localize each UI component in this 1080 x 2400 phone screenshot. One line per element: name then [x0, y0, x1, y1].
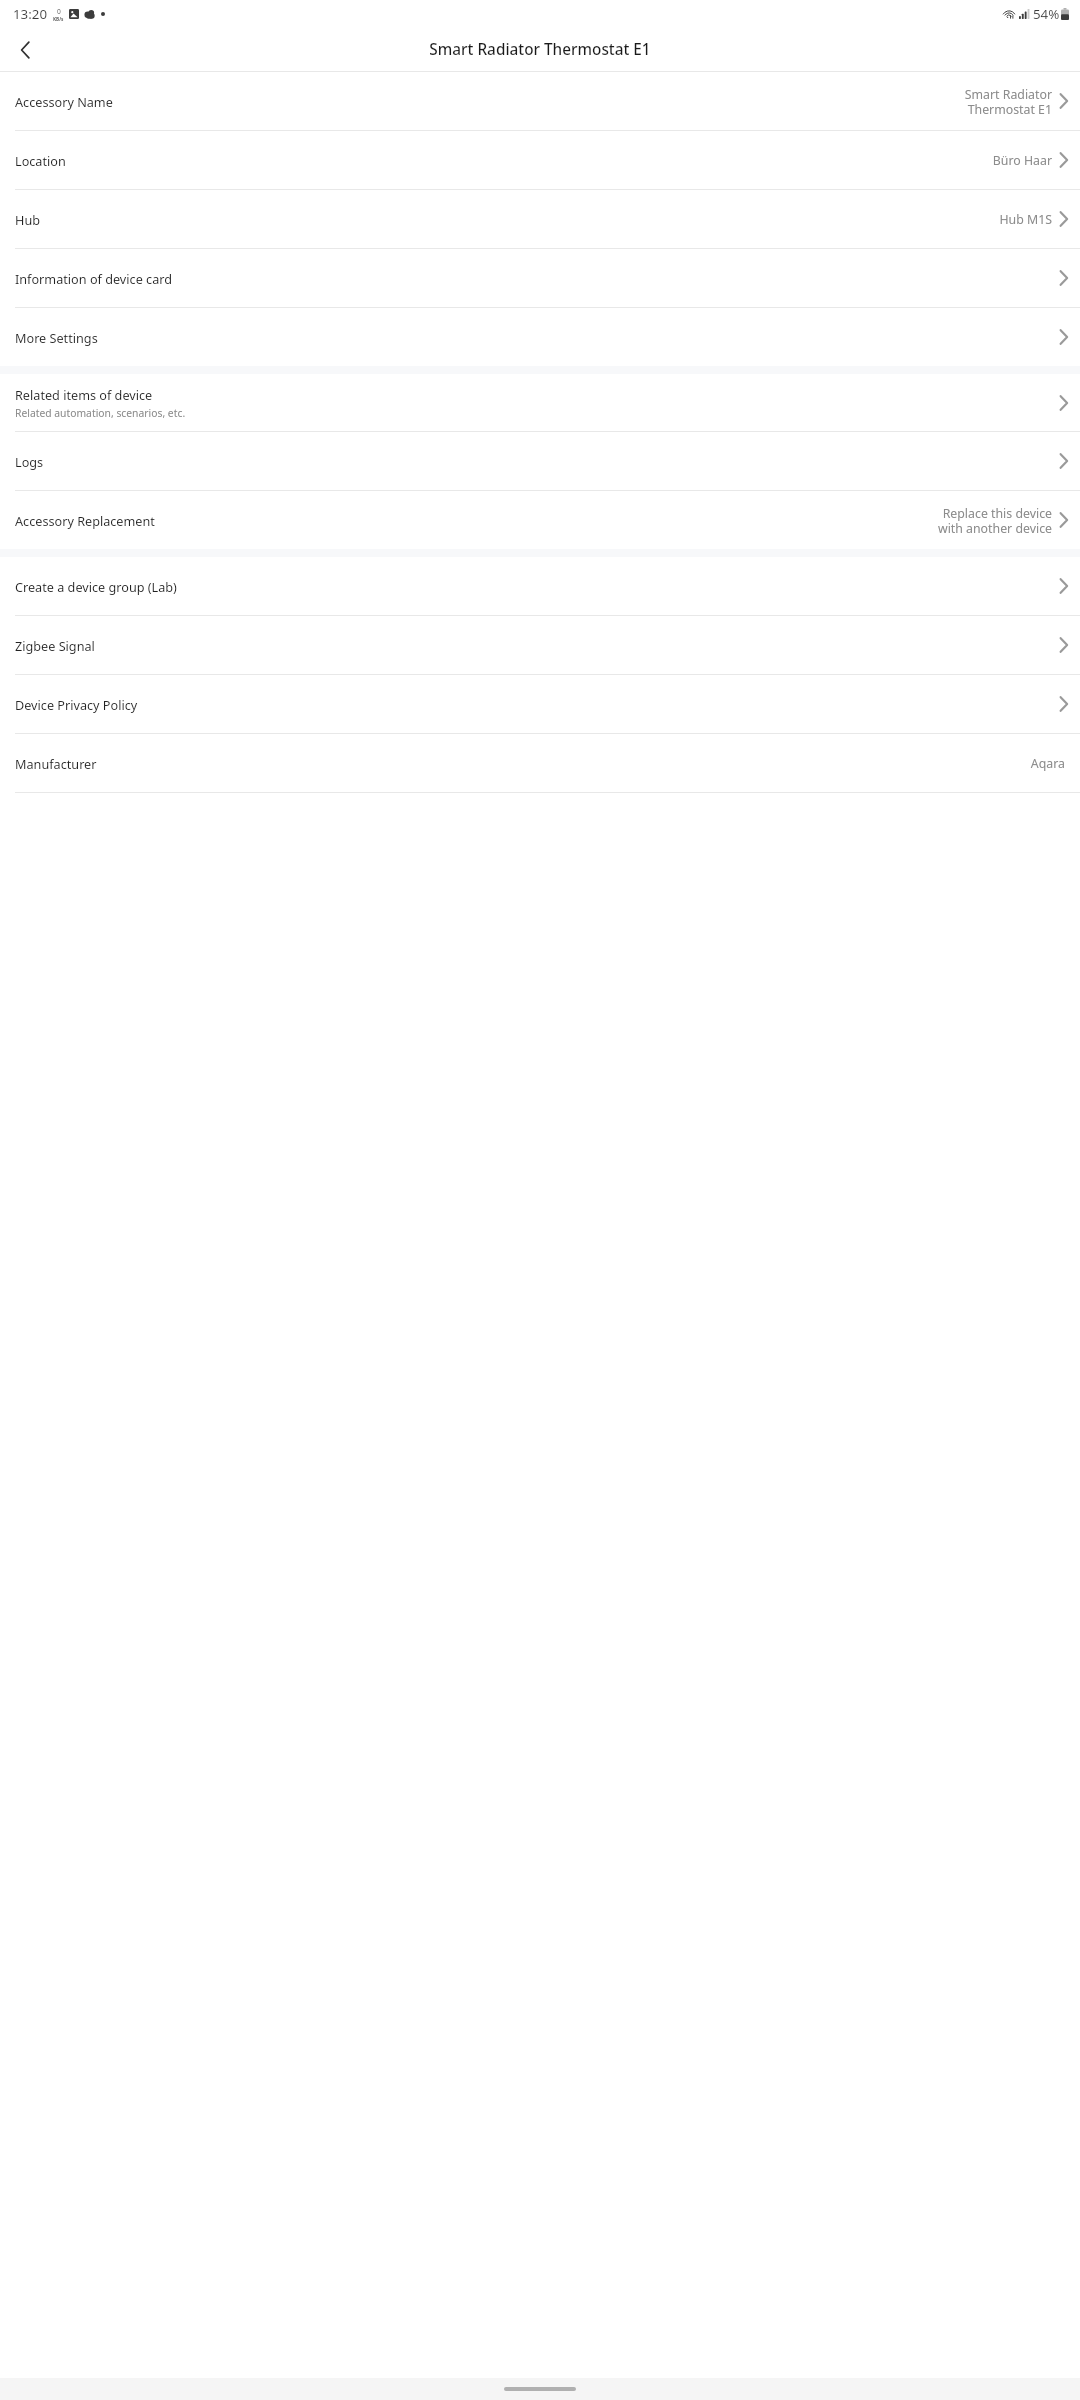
staticText: Information of device card — [15, 270, 172, 287]
staticText: Manufacturer — [15, 755, 97, 772]
staticText: Büro Haar — [992, 152, 1052, 169]
button[interactable]: Hub — [0, 190, 1080, 248]
button[interactable]: Device Privacy Policy — [0, 675, 1080, 733]
button[interactable]: Zigbee Signal — [0, 616, 1080, 674]
button[interactable]: Manufacturer — [0, 734, 1080, 792]
button[interactable]: Location — [0, 131, 1080, 189]
staticText: Replace this device with another device — [935, 505, 1052, 536]
staticText: More Settings — [15, 329, 98, 346]
staticText: 54% — [1033, 5, 1060, 23]
staticText: Hub — [15, 211, 40, 228]
staticText: Smart Radiator Thermostat E1 — [429, 39, 651, 60]
button[interactable]: Logs — [0, 432, 1080, 490]
staticText: KB/s — [53, 16, 64, 22]
staticText: Related automation, scenarios, etc. — [15, 406, 186, 420]
staticText: Hub M1S — [999, 211, 1052, 228]
staticText: Accessory Name — [15, 93, 113, 110]
button[interactable]: Accessory Replacement — [0, 491, 1080, 549]
button[interactable]: Information of device card — [0, 249, 1080, 307]
button[interactable]: Create a device group (Lab) — [0, 557, 1080, 615]
button[interactable]: Related items of device — [0, 374, 1080, 431]
staticText: 13:20 — [13, 5, 48, 23]
staticText: Smart Radiator Thermostat E1 — [939, 86, 1052, 117]
staticText: 0 — [57, 7, 61, 16]
staticText: Related items of device — [15, 386, 153, 403]
button[interactable]: Accessory Name — [0, 72, 1080, 130]
button[interactable]: More Settings — [0, 308, 1080, 366]
staticText: Create a device group (Lab) — [15, 578, 177, 595]
staticText: Accessory Replacement — [15, 512, 155, 529]
staticText: Aqara — [1030, 755, 1065, 772]
button[interactable]: Back — [9, 34, 41, 66]
staticText: Location — [15, 152, 66, 169]
staticText: Device Privacy Policy — [15, 696, 138, 713]
staticText: Logs — [15, 453, 44, 470]
staticText: Zigbee Signal — [15, 637, 95, 654]
